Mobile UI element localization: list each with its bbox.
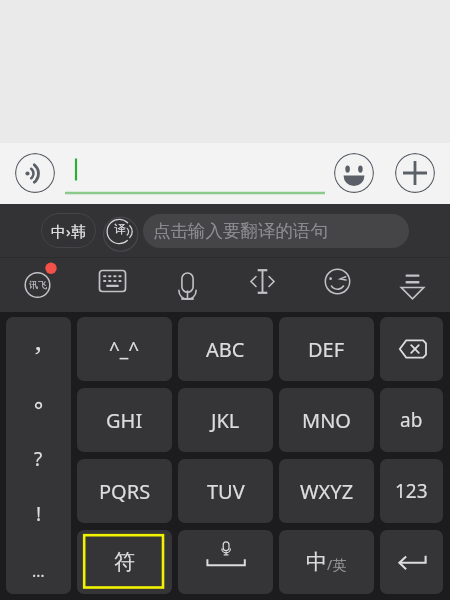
staticText: WXYZ: [300, 478, 354, 505]
button[interactable]: 符: [77, 530, 172, 594]
button[interactable]: 123: [380, 459, 443, 523]
staticText: GHI: [106, 407, 143, 434]
staticText: /英: [327, 555, 347, 574]
staticText: ^_^: [109, 336, 140, 362]
button[interactable]: JKL: [178, 388, 273, 452]
button[interactable]: TUV: [178, 459, 273, 523]
other: Enter: [380, 530, 443, 594]
staticText: JKL: [211, 407, 240, 434]
button[interactable]: Keyboard: [99, 268, 126, 295]
staticText: ?: [34, 446, 43, 472]
staticText: !: [36, 501, 42, 527]
button[interactable]: iFlytek assistant: [21, 258, 57, 294]
staticText: 点击输入要翻译的语句: [153, 220, 328, 242]
staticText: 中: [306, 549, 327, 575]
button[interactable]: ,: [6, 317, 71, 594]
button[interactable]: Enter: [380, 530, 443, 594]
button[interactable]: ab: [380, 388, 443, 452]
button[interactable]: 中: [279, 530, 374, 594]
other: Space: [178, 530, 273, 594]
button[interactable]: WXYZ: [279, 459, 374, 523]
staticText: ABC: [206, 336, 245, 363]
button[interactable]: ^_^: [77, 317, 172, 381]
staticText: DEF: [308, 336, 345, 363]
button[interactable]: Voice input: [15, 153, 55, 193]
button[interactable]: Voice input: [174, 268, 201, 295]
button[interactable]: Move cursor: [249, 268, 276, 295]
button[interactable]: Translate: [102, 216, 139, 253]
button[interactable]: DEF: [279, 317, 374, 381]
staticText: 讯飞: [29, 279, 47, 290]
staticText: 符: [114, 549, 135, 575]
staticText: TUV: [207, 478, 245, 505]
button[interactable]: MNO: [279, 388, 374, 452]
button[interactable]: More: [395, 153, 435, 193]
staticText: 123: [395, 478, 428, 504]
staticText: ,: [35, 322, 42, 357]
staticText: …: [32, 560, 45, 582]
button[interactable]: ABC: [178, 317, 273, 381]
button[interactable]: PQRS: [77, 459, 172, 523]
staticText: 中›韩: [51, 221, 86, 241]
button[interactable]: Delete: [380, 317, 443, 381]
button[interactable]: Space: [178, 530, 273, 594]
button[interactable]: 中›韩: [41, 213, 96, 248]
staticText: PQRS: [99, 478, 151, 505]
button[interactable]: Hide keyboard: [399, 268, 426, 295]
staticText: MNO: [302, 407, 351, 434]
other: Delete: [380, 317, 443, 381]
button[interactable]: 点击输入要翻译的语句: [143, 214, 409, 248]
staticText: ab: [400, 407, 423, 433]
button[interactable]: GHI: [77, 388, 172, 452]
button[interactable]: Emoji: [324, 268, 351, 295]
staticText: 译: [114, 221, 126, 236]
button[interactable]: Emoji: [334, 153, 374, 193]
